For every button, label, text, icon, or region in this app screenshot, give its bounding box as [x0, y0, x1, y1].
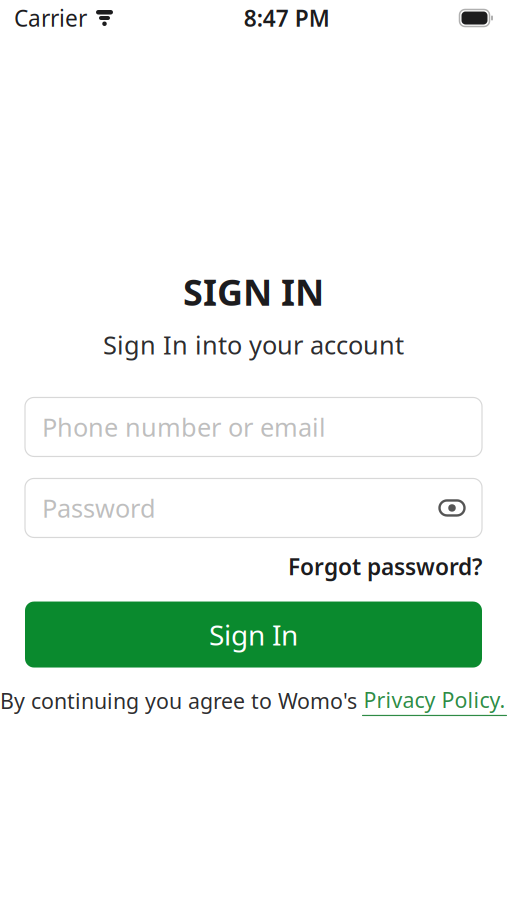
staticText: Phone number or email	[42, 410, 326, 444]
staticText: SIGN IN	[183, 268, 324, 316]
staticText: Password	[42, 491, 156, 525]
button[interactable]: Forgot password?	[288, 551, 482, 581]
staticText: Carrier	[14, 3, 87, 33]
staticText: 8:47 PM	[244, 3, 330, 33]
button[interactable]: Sign In	[25, 601, 482, 667]
button[interactable]: Password	[25, 478, 482, 537]
button[interactable]: Privacy Policy.	[362, 685, 507, 716]
staticText: Sign In into your account	[103, 328, 404, 361]
button[interactable]: Phone number or email	[25, 397, 482, 456]
staticText: Privacy Policy.	[363, 685, 505, 714]
staticText: Sign In	[209, 616, 298, 653]
staticText: Forgot password?	[288, 551, 482, 581]
staticText: By continuing you agree to Womo's	[0, 687, 357, 715]
